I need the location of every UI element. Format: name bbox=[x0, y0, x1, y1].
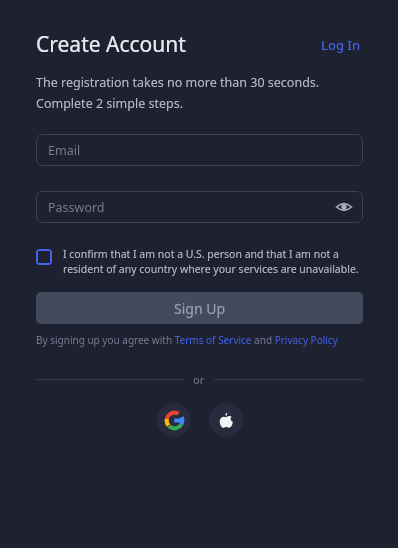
button[interactable]: Sign up with Apple bbox=[209, 403, 243, 437]
staticText: Sign Up bbox=[174, 299, 226, 318]
staticText: or bbox=[193, 372, 205, 387]
button[interactable]: By signing up you agree with Terms of Se… bbox=[36, 333, 338, 347]
staticText: The registration takes no more than 30 s… bbox=[36, 74, 320, 111]
staticText: Password bbox=[48, 199, 105, 216]
button[interactable]: Password bbox=[36, 191, 363, 223]
staticText: Log In bbox=[321, 36, 361, 54]
button[interactable]: Log In bbox=[319, 33, 363, 57]
button[interactable]: Email bbox=[36, 134, 363, 166]
button[interactable]: Sign Up bbox=[36, 292, 363, 324]
button[interactable]: Show password bbox=[336, 199, 352, 215]
button[interactable]: I confirm that I am not a U.S. person an… bbox=[36, 247, 363, 276]
staticText: Email bbox=[48, 142, 81, 159]
button[interactable]: Sign up with Google bbox=[157, 403, 191, 437]
staticText: Create Account bbox=[36, 30, 186, 59]
staticText: I confirm that I am not a U.S. person an… bbox=[63, 247, 363, 276]
